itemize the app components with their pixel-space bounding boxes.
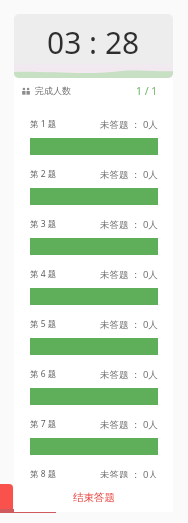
button[interactable]: 第 7 题 (14, 403, 173, 453)
other: Quiz action (0, 484, 13, 512)
staticText: 未答题 ： 0人 (100, 118, 158, 131)
button[interactable]: 第 3 题 (14, 203, 173, 253)
button[interactable]: 结束答题 (14, 478, 173, 512)
staticText: 第 8 题 (30, 468, 57, 480)
staticText: 1 / 1 (136, 84, 158, 98)
staticText: 第 7 题 (30, 418, 57, 430)
staticText: 第 3 题 (30, 218, 57, 230)
staticText: 第 6 题 (30, 368, 57, 380)
button[interactable]: 第 5 题 (14, 303, 173, 353)
staticText: 第 1 题 (30, 118, 57, 130)
button[interactable]: 第 6 题 (14, 353, 173, 403)
staticText: 未答题 ： 0人 (100, 268, 158, 281)
button[interactable]: 第 8 题 (14, 453, 173, 478)
staticText: 未答题 ： 0人 (100, 318, 158, 331)
staticText: 未答题 ： 0人 (100, 168, 158, 181)
staticText: 03 : 28 (47, 22, 140, 63)
button[interactable]: 第 1 题 (14, 103, 173, 153)
staticText: 第 2 题 (30, 168, 57, 180)
staticText: 未答题 ： 0人 (100, 368, 158, 381)
button[interactable]: 第 4 题 (14, 253, 173, 303)
button[interactable]: 第 2 题 (14, 153, 173, 203)
staticText: 结束答题 (73, 491, 115, 504)
button[interactable]: 完成人数 (14, 78, 173, 103)
staticText: 第 4 题 (30, 268, 57, 280)
staticText: 未答题 ： 0人 (100, 218, 158, 231)
staticText: 未答题 ： 0人 (100, 468, 158, 481)
staticText: 完成人数 (35, 85, 71, 96)
staticText: 未答题 ： 0人 (100, 418, 158, 431)
staticText: 第 5 题 (30, 318, 57, 330)
